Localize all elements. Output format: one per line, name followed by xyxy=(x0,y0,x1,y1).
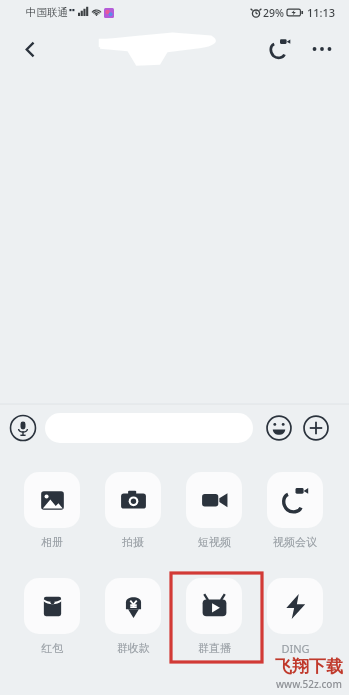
staticText: 群收款 xyxy=(117,641,150,655)
staticText: 视频会议 xyxy=(273,535,317,549)
staticText: 中国联通 xyxy=(26,6,68,19)
button[interactable]: Emoji xyxy=(265,414,293,442)
staticText: 29% xyxy=(263,6,284,20)
staticText: 拍摄 xyxy=(122,535,144,549)
button[interactable]: 拍摄 xyxy=(105,472,161,549)
staticText: DING xyxy=(281,641,310,656)
staticText: 群直播 xyxy=(198,641,231,655)
button[interactable]: Back xyxy=(10,29,50,69)
staticText: 飞翔下载 xyxy=(275,656,343,677)
button[interactable]: 短视频 xyxy=(186,472,242,549)
staticText: 相册 xyxy=(41,535,63,549)
button[interactable]: 视频会议 xyxy=(267,472,323,549)
button[interactable]: 群收款 xyxy=(105,578,161,655)
button[interactable]: 红包 xyxy=(24,578,80,655)
button[interactable]: Voice input xyxy=(9,414,37,442)
button[interactable]: DING xyxy=(267,578,323,656)
staticText: 短视频 xyxy=(198,535,231,549)
button[interactable]: 相册 xyxy=(24,472,80,549)
button[interactable]: Video call xyxy=(259,28,301,70)
staticText: www.52z.com xyxy=(276,677,342,691)
button[interactable]: 群直播 xyxy=(186,578,242,655)
staticText: 11:13 xyxy=(307,5,336,20)
button[interactable]: More options xyxy=(301,28,343,70)
button[interactable]: More actions xyxy=(302,414,330,442)
staticText: 红包 xyxy=(41,641,63,655)
button[interactable]: Message input xyxy=(45,413,253,443)
